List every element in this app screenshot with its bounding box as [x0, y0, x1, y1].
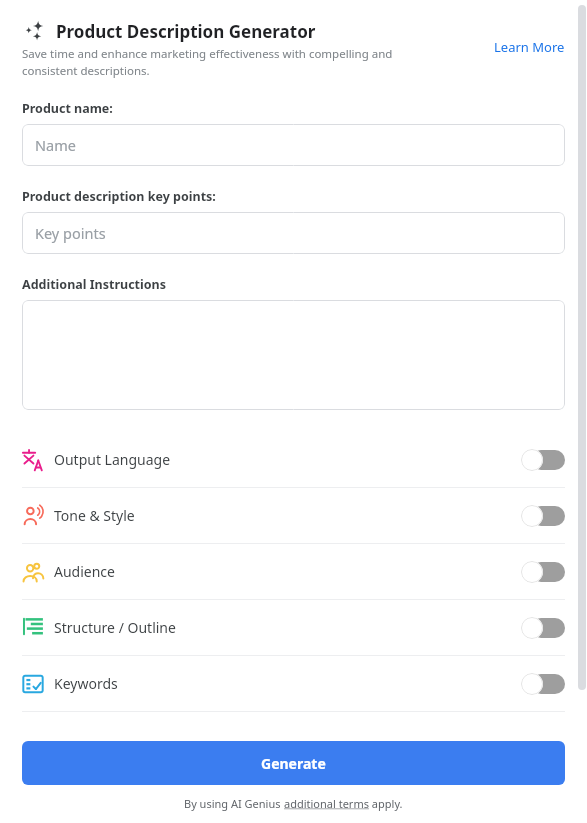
- staticText: Key points: [35, 223, 106, 243]
- staticText: Generate: [261, 754, 326, 773]
- button[interactable]: additional terms: [284, 796, 369, 811]
- button[interactable]: Learn More: [494, 38, 565, 56]
- button[interactable]: Keywords: [0, 656, 587, 711]
- staticText: Product description key points:: [22, 188, 216, 205]
- staticText: Audience: [54, 562, 115, 581]
- staticText: additional terms: [284, 796, 369, 811]
- button[interactable]: Tone & Style: [0, 488, 587, 543]
- other: Output Language toggle: [521, 449, 565, 471]
- staticText: Additional Instructions: [22, 276, 166, 293]
- button[interactable]: [22, 300, 565, 410]
- other: Audience toggle: [521, 561, 565, 583]
- button[interactable]: Structure / Outline: [0, 600, 587, 655]
- staticText: Save time and enhance marketing effectiv…: [22, 46, 440, 78]
- button[interactable]: Output Language: [0, 432, 587, 487]
- other: Structure / Outline toggle: [521, 617, 565, 639]
- staticText: Name: [35, 135, 76, 155]
- staticText: Keywords: [54, 674, 118, 693]
- staticText: Output Language: [54, 450, 171, 469]
- staticText: Product name:: [22, 100, 113, 117]
- button[interactable]: Key points: [22, 212, 565, 254]
- staticText: Tone & Style: [54, 506, 135, 525]
- staticText: By using AI Genius: [184, 796, 284, 811]
- button[interactable]: Generate: [22, 741, 565, 785]
- other: Keywords toggle: [521, 673, 565, 695]
- button[interactable]: Audience: [0, 544, 587, 599]
- staticText: Structure / Outline: [54, 618, 176, 637]
- staticText: Product Description Generator: [56, 20, 316, 43]
- button[interactable]: Name: [22, 124, 565, 166]
- staticText: apply.: [369, 796, 403, 811]
- other: Tone & Style toggle: [521, 505, 565, 527]
- staticText: Learn More: [494, 38, 565, 56]
